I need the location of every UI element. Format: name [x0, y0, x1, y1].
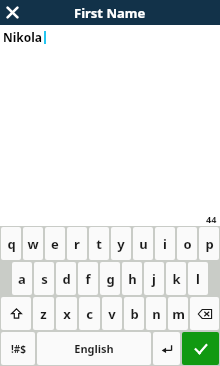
button[interactable]: o: [177, 227, 197, 260]
staticText: Nikola: [3, 29, 43, 45]
button[interactable]: q: [1, 227, 21, 260]
staticText: q: [7, 235, 16, 253]
button[interactable]: Shift: [1, 297, 31, 330]
staticText: k: [172, 270, 181, 288]
staticText: !#$: [11, 342, 26, 356]
button[interactable]: Backspace: [190, 297, 219, 330]
button[interactable]: z: [33, 297, 54, 330]
staticText: v: [108, 305, 116, 323]
button[interactable]: s: [34, 262, 54, 295]
staticText: w: [27, 235, 39, 253]
button[interactable]: c: [79, 297, 100, 330]
button[interactable]: r: [67, 227, 87, 260]
staticText: x: [63, 305, 71, 323]
staticText: y: [117, 235, 125, 253]
staticText: z: [40, 305, 47, 323]
button[interactable]: x: [56, 297, 77, 330]
button[interactable]: f: [78, 262, 98, 295]
button[interactable]: l: [188, 262, 208, 295]
button[interactable]: v: [102, 297, 122, 330]
button[interactable]: e: [45, 227, 65, 260]
staticText: j: [152, 270, 156, 288]
button[interactable]: b: [124, 297, 144, 330]
staticText: b: [130, 305, 139, 323]
button[interactable]: g: [100, 262, 120, 295]
button[interactable]: m: [168, 297, 188, 330]
staticText: p: [205, 235, 214, 253]
button[interactable]: Nikola: [3, 29, 43, 45]
staticText: First Name: [74, 4, 146, 22]
button[interactable]: j: [144, 262, 164, 295]
button[interactable]: a: [12, 262, 32, 295]
staticText: r: [74, 235, 80, 253]
button[interactable]: h: [122, 262, 142, 295]
button[interactable]: i: [155, 227, 175, 260]
button[interactable]: Confirm: [182, 332, 219, 365]
button[interactable]: u: [133, 227, 153, 260]
staticText: a: [18, 270, 26, 288]
staticText: h: [128, 270, 137, 288]
button[interactable]: t: [89, 227, 109, 260]
button[interactable]: n: [146, 297, 166, 330]
staticText: f: [85, 270, 91, 288]
staticText: s: [41, 270, 48, 288]
staticText: g: [106, 270, 115, 288]
button[interactable]: p: [199, 227, 219, 260]
staticText: English: [74, 341, 114, 356]
staticText: 44: [206, 213, 217, 225]
staticText: t: [96, 235, 102, 253]
button[interactable]: English: [37, 332, 151, 365]
button[interactable]: d: [56, 262, 76, 295]
button[interactable]: y: [111, 227, 131, 260]
staticText: u: [139, 235, 148, 253]
staticText: o: [183, 235, 192, 253]
staticText: e: [51, 235, 59, 253]
button[interactable]: w: [23, 227, 43, 260]
staticText: m: [172, 305, 185, 323]
staticText: c: [86, 305, 93, 323]
button[interactable]: !#$: [1, 332, 35, 365]
staticText: n: [152, 305, 161, 323]
button[interactable]: Enter: [153, 332, 180, 365]
staticText: l: [196, 270, 200, 288]
staticText: d: [62, 270, 71, 288]
button[interactable]: Close: [0, 0, 25, 25]
staticText: i: [163, 235, 167, 253]
button[interactable]: k: [166, 262, 186, 295]
